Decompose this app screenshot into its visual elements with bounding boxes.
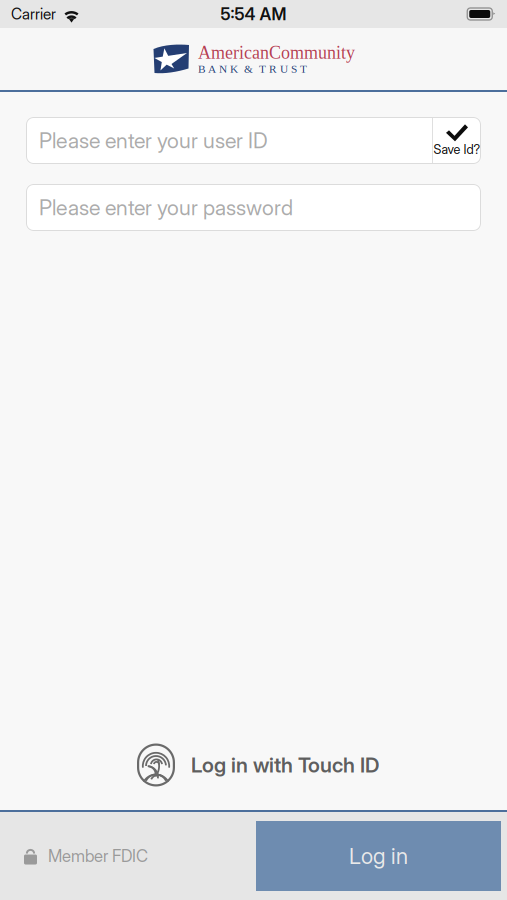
staticText: Log in bbox=[349, 843, 408, 869]
staticText: Log in with Touch ID bbox=[191, 752, 379, 777]
staticText: Member FDIC bbox=[48, 846, 148, 866]
staticText: AmericanCommunity bbox=[198, 43, 355, 63]
staticText: Please enter your password bbox=[39, 195, 293, 220]
staticText: Please enter your user ID bbox=[39, 128, 268, 153]
staticText: Carrier bbox=[11, 5, 56, 23]
staticText: B A N K & T R U S T bbox=[198, 63, 307, 75]
staticText: 5:54 AM bbox=[220, 4, 286, 24]
button[interactable]: Log in with Touch ID bbox=[128, 742, 379, 788]
button[interactable]: Log in bbox=[256, 821, 501, 891]
staticText: Save Id? bbox=[433, 142, 480, 157]
button[interactable]: Save Id? bbox=[433, 117, 481, 164]
